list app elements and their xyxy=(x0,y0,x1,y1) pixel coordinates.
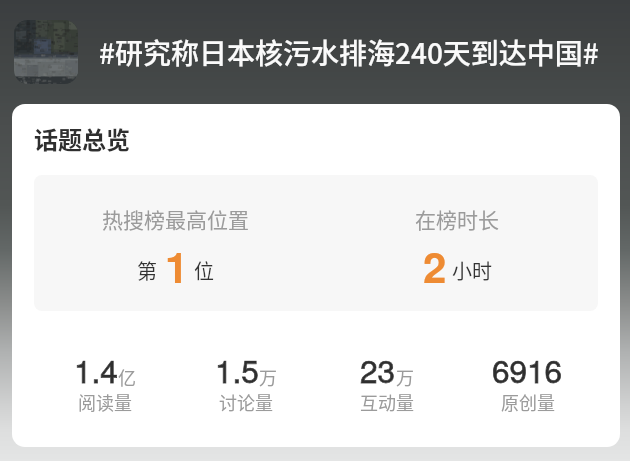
staticText: 23 xyxy=(360,347,396,392)
button[interactable]: Topic image xyxy=(0,0,630,104)
staticText: 1.5 xyxy=(215,347,259,392)
staticText: 原创量 xyxy=(501,389,555,415)
staticText: 位 xyxy=(194,256,214,285)
staticText: 万 xyxy=(396,364,414,390)
staticText: 1.5 xyxy=(215,347,259,392)
button[interactable]: 6916 xyxy=(457,347,598,418)
button[interactable]: 在榜时长 xyxy=(316,175,598,296)
button[interactable]: 热搜榜最高位置 xyxy=(34,175,316,296)
staticText: 阅读量 xyxy=(78,389,132,415)
staticText: 互动量 xyxy=(360,389,414,415)
staticText: 2 xyxy=(423,236,447,296)
staticText: 第 xyxy=(137,256,157,285)
staticText: 亿 xyxy=(118,364,136,390)
staticText: 热搜榜最高位置 xyxy=(102,204,249,234)
button[interactable]: 1.4 xyxy=(34,347,175,418)
staticText: 1.4 xyxy=(74,347,118,392)
staticText: 1 xyxy=(165,236,189,296)
button[interactable]: 1.5 xyxy=(175,347,316,418)
button[interactable]: 23 xyxy=(316,347,457,418)
staticText: 6916 xyxy=(492,347,563,392)
staticText: 万 xyxy=(259,364,277,390)
staticText: 话题总览 xyxy=(34,121,130,156)
staticText: 6916 xyxy=(492,347,563,392)
staticText: 1.4 xyxy=(74,347,118,392)
staticText: 23 xyxy=(360,347,396,392)
staticText: 讨论量 xyxy=(219,389,273,415)
staticText: #研究称日本核污水排海240天到达中国# xyxy=(99,32,599,73)
staticText: 小时 xyxy=(452,256,492,285)
button[interactable]: Topic image xyxy=(14,20,78,84)
staticText: 在榜时长 xyxy=(415,204,499,234)
